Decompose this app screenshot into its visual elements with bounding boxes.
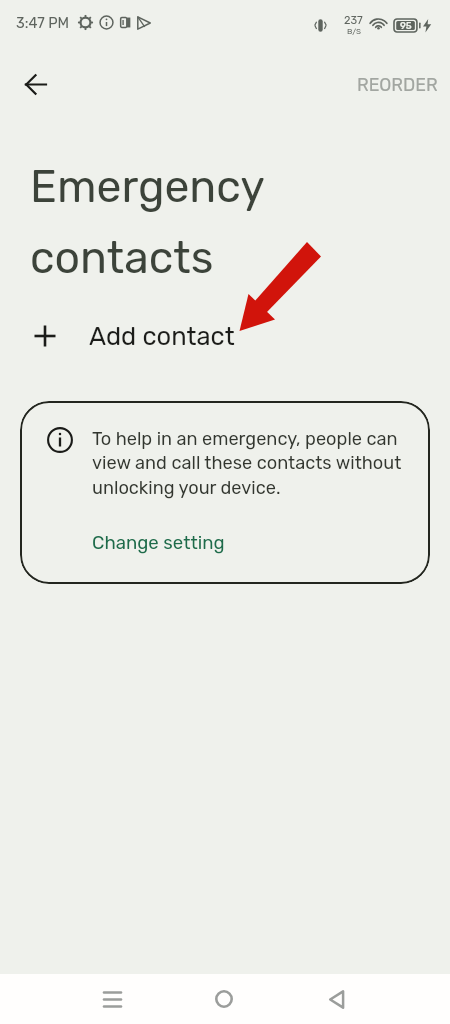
button[interactable]: REORDER [349,66,446,103]
staticText: B/S [347,27,361,36]
button[interactable]: Back [280,974,392,1024]
staticText: 95 [400,20,412,31]
button[interactable]: Add contact [0,308,450,364]
staticText: Add contact [89,321,235,351]
button[interactable]: Change setting [92,532,225,554]
button[interactable]: Recent apps [57,974,168,1024]
staticText: REORDER [357,74,438,95]
staticText: Change setting [92,532,225,554]
button[interactable]: Back [11,60,59,108]
staticText: To help in an emergency, people can view… [92,428,410,499]
staticText: 237 [344,14,363,27]
staticText: 3:47 PM [16,14,69,31]
button[interactable]: Home [168,974,280,1024]
staticText: Emergency contacts [30,160,450,284]
